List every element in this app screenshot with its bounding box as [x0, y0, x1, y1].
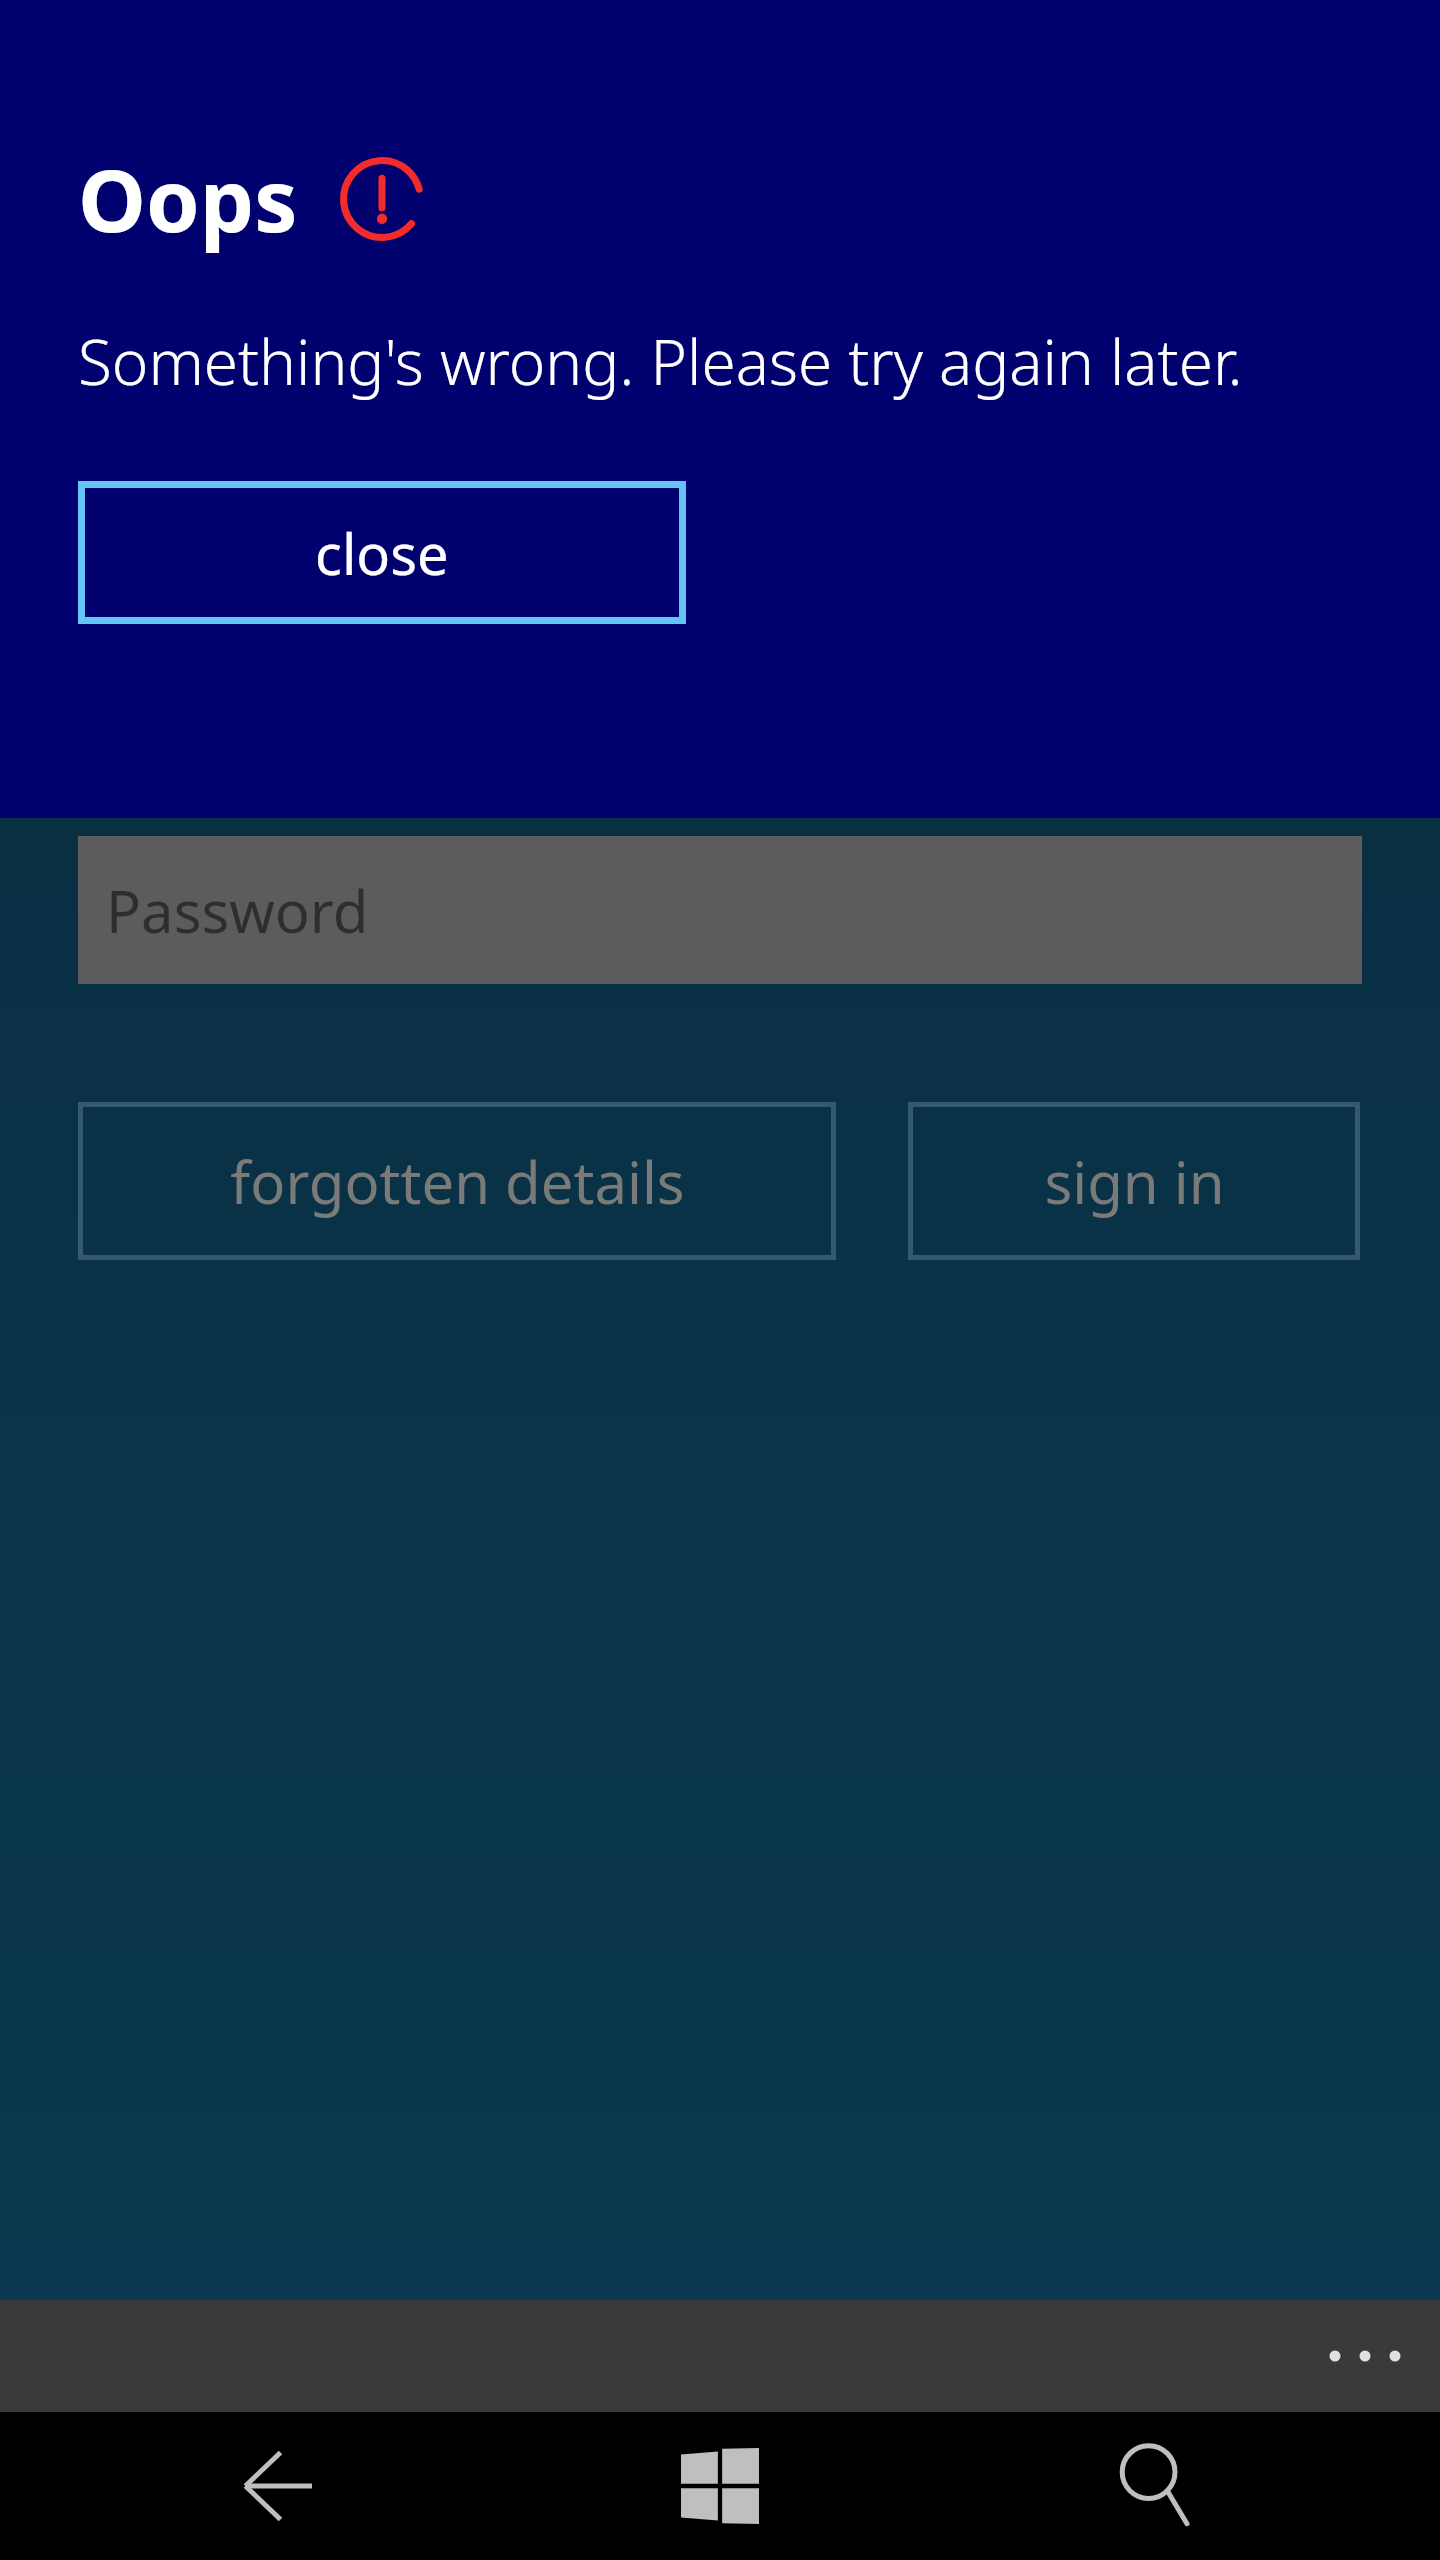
button[interactable]: sign in	[908, 1102, 1360, 1260]
staticText: Password	[106, 871, 369, 950]
button[interactable]: forgotten details	[78, 1102, 836, 1260]
other: Error	[340, 157, 424, 241]
button[interactable]: Search	[1005, 2412, 1305, 2560]
staticText: sign in	[1044, 1142, 1225, 1221]
button[interactable]: Password	[78, 836, 1362, 984]
button[interactable]: Back	[135, 2412, 435, 2560]
staticText: Oops	[78, 140, 298, 257]
button[interactable]: More options	[1290, 2300, 1440, 2412]
staticText: forgotten details	[230, 1142, 685, 1221]
button[interactable]: Start	[570, 2412, 870, 2560]
staticText: Something's wrong. Please try again late…	[78, 319, 1243, 403]
staticText: close	[315, 515, 449, 591]
button[interactable]: close	[78, 481, 686, 624]
